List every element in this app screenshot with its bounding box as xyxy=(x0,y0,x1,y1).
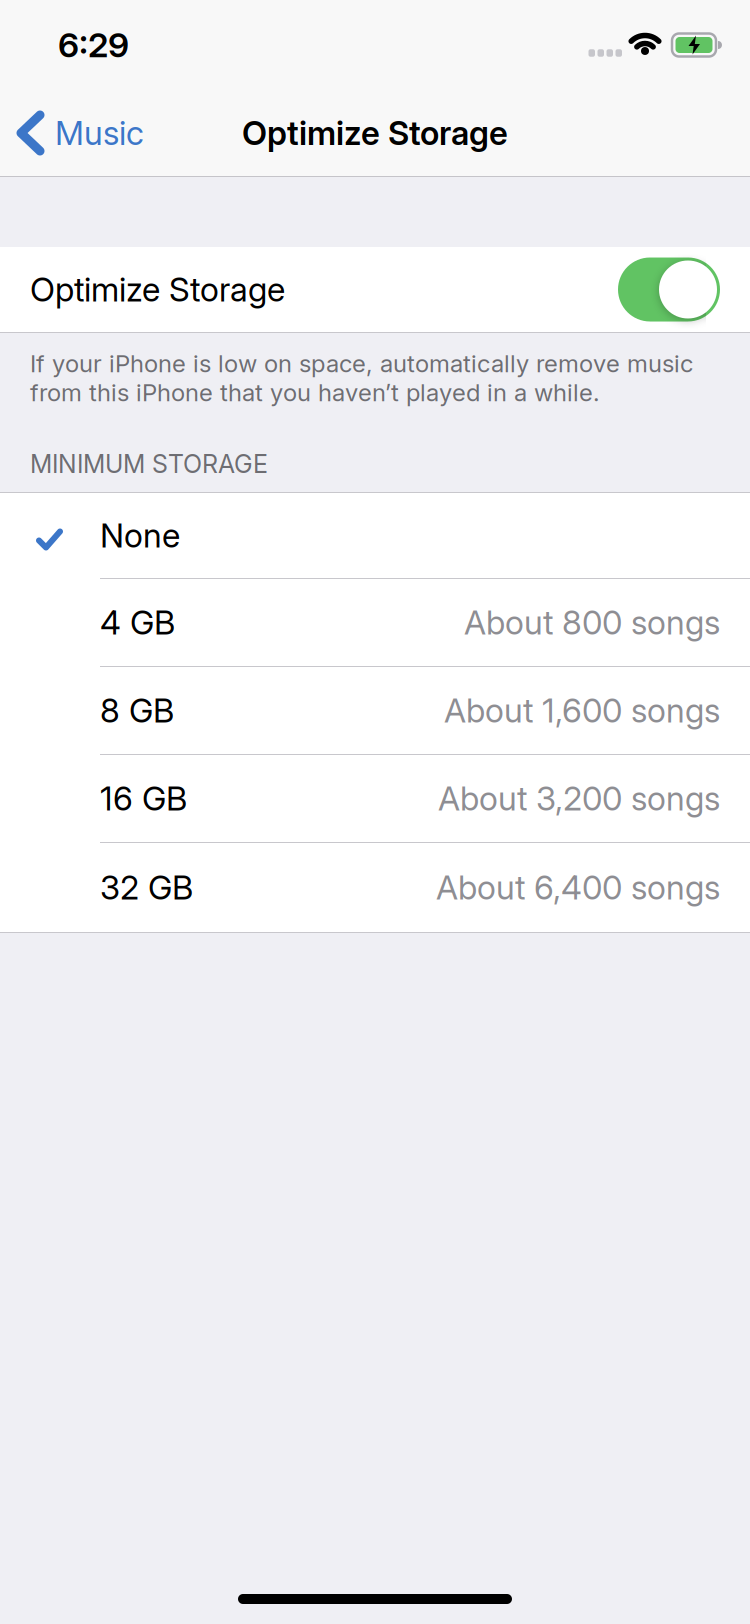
button[interactable]: Optimize Storage xyxy=(0,247,750,332)
staticText: Music xyxy=(55,113,144,153)
button[interactable]: 4 GB xyxy=(0,579,750,666)
button[interactable]: 8 GB xyxy=(0,667,750,754)
button[interactable]: 32 GB xyxy=(0,843,750,932)
staticText: About 800 songs xyxy=(464,602,720,642)
button[interactable]: None xyxy=(0,493,750,578)
staticText: Optimize Storage xyxy=(242,113,508,153)
staticText: 16 GB xyxy=(100,778,187,818)
staticText: About 3,200 songs xyxy=(438,778,720,818)
button[interactable]: 16 GB xyxy=(0,755,750,842)
staticText: About 1,600 songs xyxy=(444,690,720,730)
staticText: If your iPhone is low on space, automati… xyxy=(30,349,693,407)
button[interactable]: Music xyxy=(0,113,144,153)
staticText: None xyxy=(100,515,180,555)
staticText: 32 GB xyxy=(100,867,193,907)
staticText: Optimize Storage xyxy=(30,269,285,309)
staticText: 8 GB xyxy=(100,690,174,730)
staticText: 6:29 xyxy=(58,24,129,65)
staticText: MINIMUM STORAGE xyxy=(30,449,268,479)
staticText: 4 GB xyxy=(100,602,175,642)
staticText: About 6,400 songs xyxy=(436,867,720,907)
